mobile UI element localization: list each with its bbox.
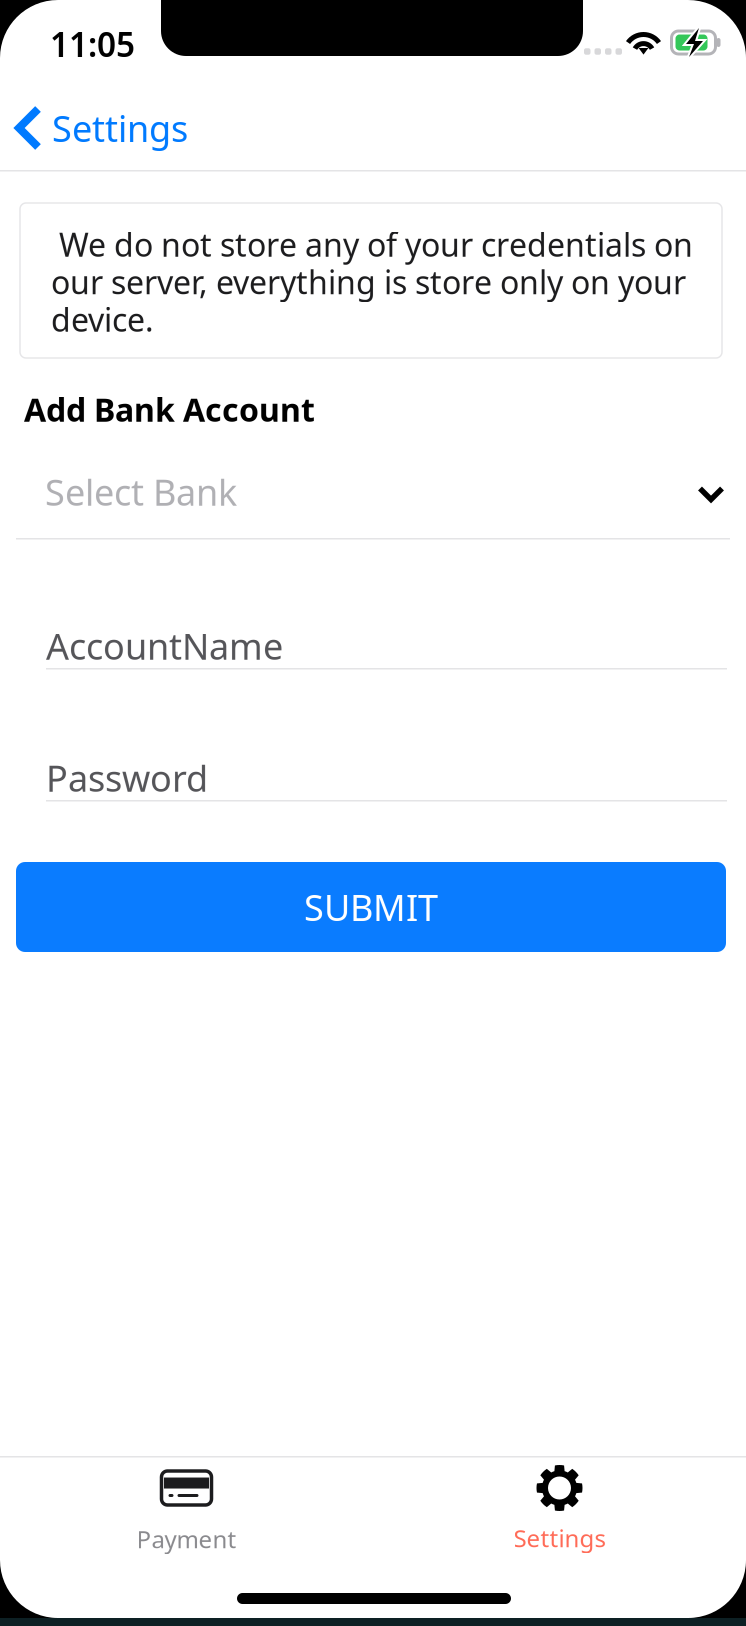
staticText: Select Bank — [45, 468, 237, 516]
staticText: Settings — [513, 1522, 605, 1554]
staticText: Settings — [52, 104, 188, 152]
button[interactable]: Settings — [0, 92, 250, 164]
staticText: We do not store any of your credentials … — [51, 223, 693, 340]
staticText: SUBMIT — [304, 883, 438, 931]
staticText: Password — [46, 754, 208, 802]
button[interactable]: Payment — [0, 1458, 373, 1568]
staticText: Add Bank Account — [24, 388, 315, 430]
staticText: AccountName — [46, 622, 283, 670]
staticText: Payment — [136, 1523, 236, 1555]
staticText: 11:05 — [50, 22, 135, 66]
button[interactable]: SUBMIT — [16, 862, 726, 952]
button[interactable]: Settings — [373, 1458, 746, 1568]
